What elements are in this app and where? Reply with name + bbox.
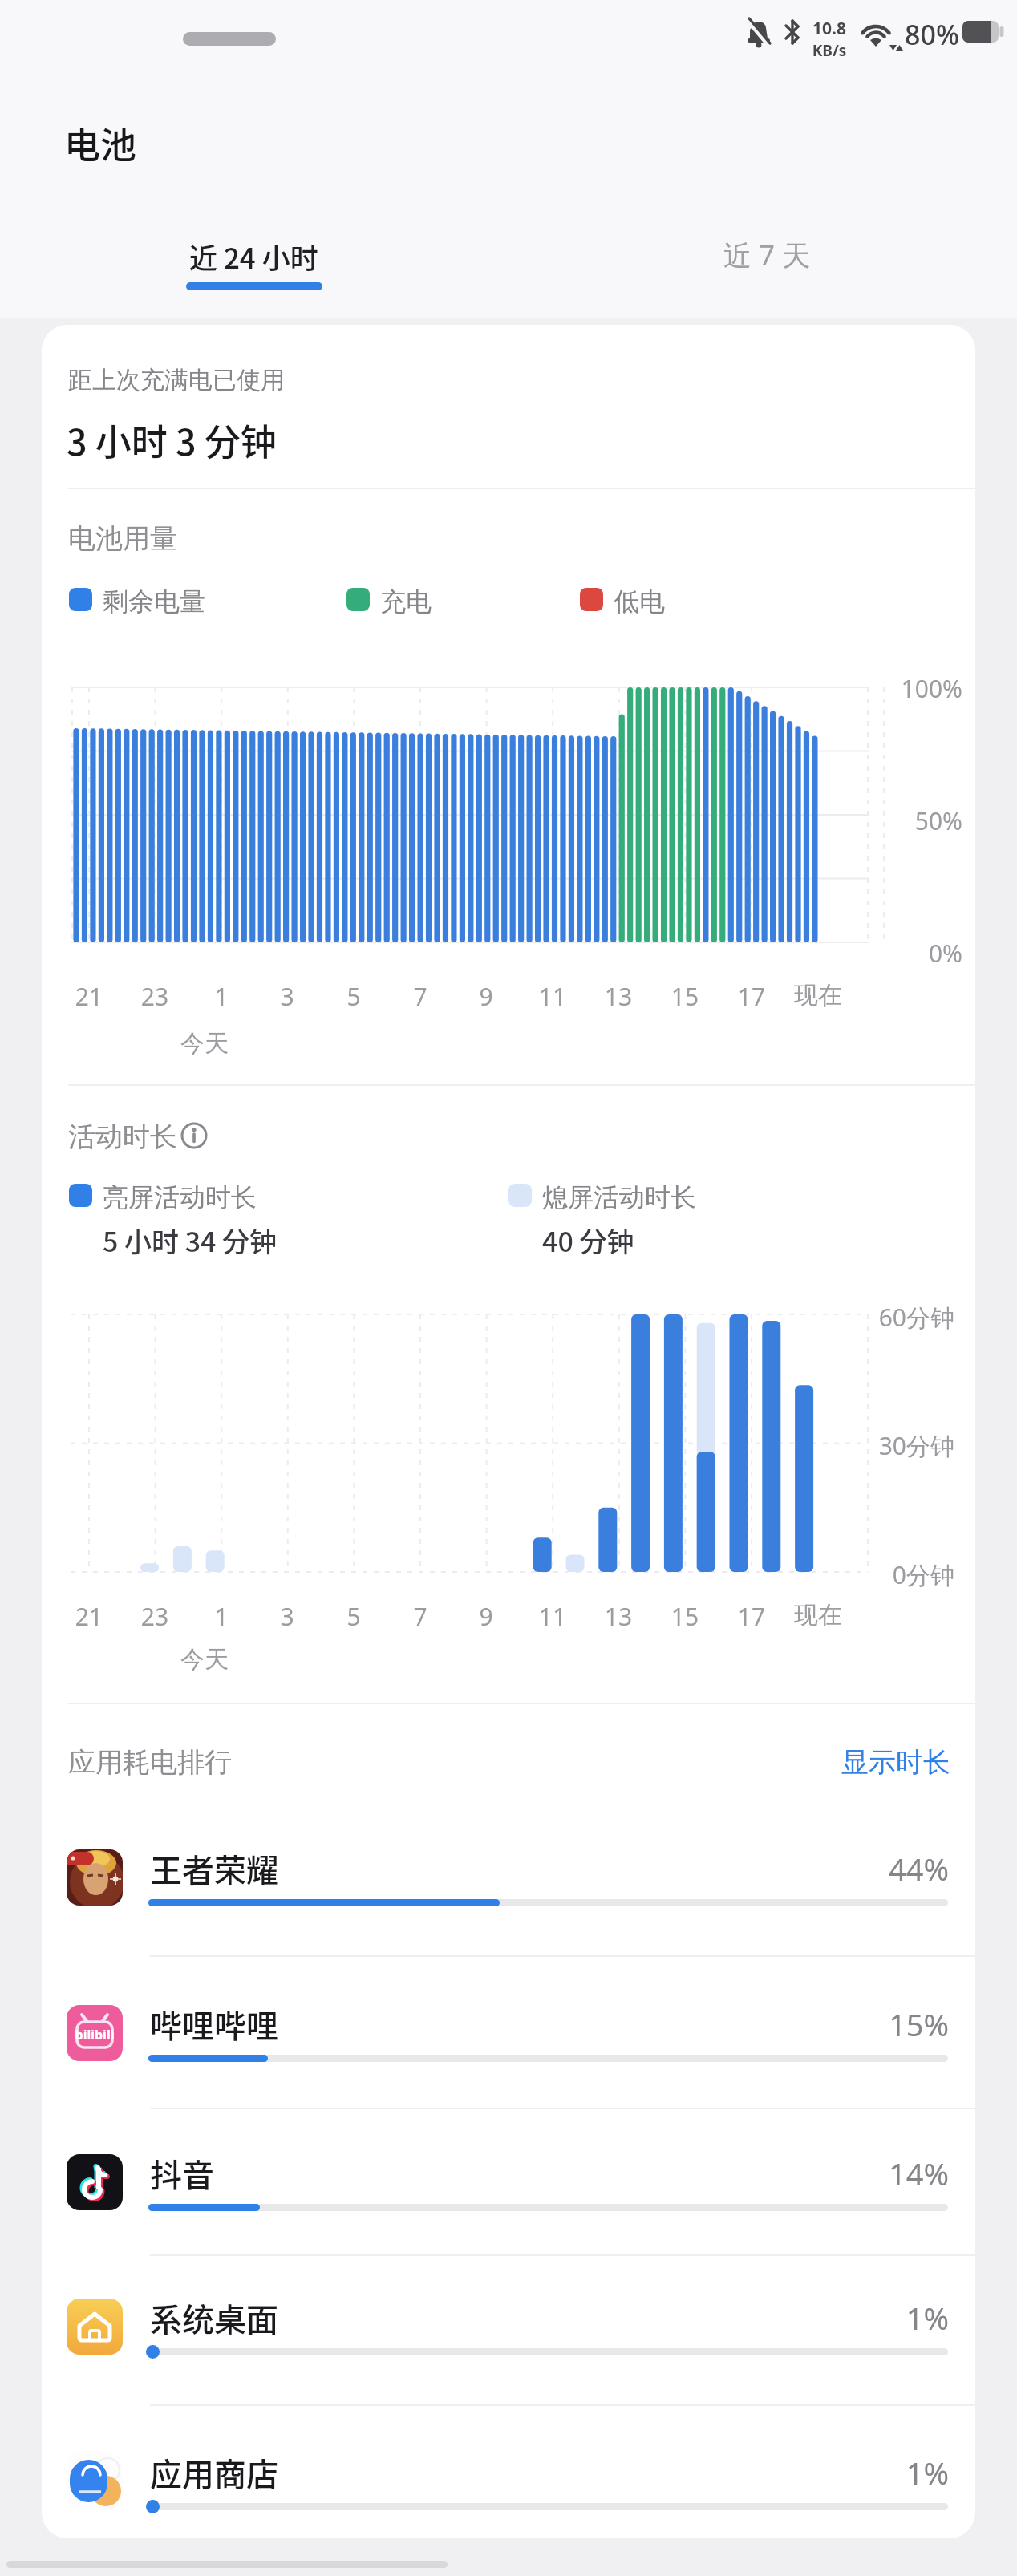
staticText: 哔哩哔哩 [150, 2001, 278, 2047]
staticText: 13 [586, 980, 650, 1013]
staticText: 3 [255, 1600, 319, 1633]
staticText: 0分钟 [866, 1558, 954, 1591]
staticText: 现在 [786, 1600, 850, 1630]
staticText: 11 [521, 1600, 585, 1633]
staticText: 9 [454, 980, 518, 1013]
staticText: 50% [874, 804, 962, 837]
staticText: 低电 [614, 585, 665, 618]
staticText: 80% [905, 16, 959, 53]
staticText: 23 [123, 980, 187, 1013]
staticText: 15% [788, 2003, 949, 2045]
staticText: 应用耗电排行 [68, 1745, 232, 1780]
staticText: 5 [322, 1600, 386, 1633]
staticText: 近 7 天 [723, 236, 811, 274]
staticText: 1 [189, 980, 253, 1013]
button[interactable]: bilibili [42, 1957, 975, 2109]
staticText: 0% [874, 937, 962, 970]
button[interactable]: 王者荣耀 [42, 1801, 975, 1954]
staticText: 1% [788, 2452, 949, 2493]
staticText: 现在 [786, 980, 850, 1011]
staticText: 7 [388, 1600, 452, 1633]
staticText: 3 [255, 980, 319, 1013]
staticText: 23 [123, 1600, 187, 1633]
staticText: 应用商店 [150, 2449, 278, 2496]
staticText: 30分钟 [866, 1429, 954, 1462]
button[interactable]: 显示时长 [802, 1740, 975, 1782]
staticText: 9 [454, 1600, 518, 1633]
staticText: 17 [719, 980, 784, 1013]
button[interactable]: 系统桌面 [42, 2250, 975, 2403]
staticText: 17 [719, 1600, 784, 1633]
staticText: 3 小时 3 分钟 [67, 414, 277, 466]
staticText: 5 小时 34 分钟 [103, 1221, 278, 1260]
staticText: 100% [874, 672, 962, 705]
staticText: 5 [322, 980, 386, 1013]
button[interactable]: 近 24 小时 [173, 233, 334, 297]
staticText: 13 [586, 1600, 650, 1633]
staticText: 44% [788, 1848, 949, 1889]
staticText: 抖音 [150, 2150, 214, 2197]
staticText: 21 [57, 1600, 121, 1633]
staticText: 电池 [64, 117, 137, 169]
staticText: 15 [653, 1600, 717, 1633]
staticText: 40 分钟 [542, 1221, 634, 1260]
staticText: 60分钟 [866, 1301, 954, 1334]
staticText: 系统桌面 [150, 2295, 278, 2341]
button[interactable]: 应用商店 [42, 2405, 975, 2558]
staticText: 14% [788, 2153, 949, 2194]
staticText: KB/s [805, 40, 853, 61]
staticText: 15 [653, 980, 717, 1013]
staticText: 11 [521, 980, 585, 1013]
staticText: 21 [57, 980, 121, 1013]
staticText: bilibili [72, 2026, 117, 2043]
staticText: 近 24 小时 [189, 236, 318, 277]
button[interactable]: 近 7 天 [696, 233, 837, 281]
staticText: 1% [788, 2297, 949, 2339]
staticText: 1 [189, 1600, 253, 1633]
staticText: 熄屏活动时长 [542, 1181, 696, 1213]
staticText: 剩余电量 [103, 585, 205, 618]
staticText: 距上次充满电已使用 [68, 365, 285, 395]
staticText: 今天 [172, 1028, 237, 1059]
staticText: 今天 [172, 1644, 237, 1675]
staticText: 王者荣耀 [150, 1845, 278, 1892]
staticText: 10.8 [805, 17, 853, 40]
staticText: 显示时长 [802, 1745, 950, 1780]
staticText: 电池用量 [68, 521, 177, 556]
staticText: 亮屏活动时长 [103, 1181, 257, 1213]
staticText: 充电 [380, 585, 432, 618]
button[interactable]: 抖音 [42, 2106, 975, 2258]
staticText: 7 [388, 980, 452, 1013]
staticText: 活动时长 [68, 1120, 177, 1154]
